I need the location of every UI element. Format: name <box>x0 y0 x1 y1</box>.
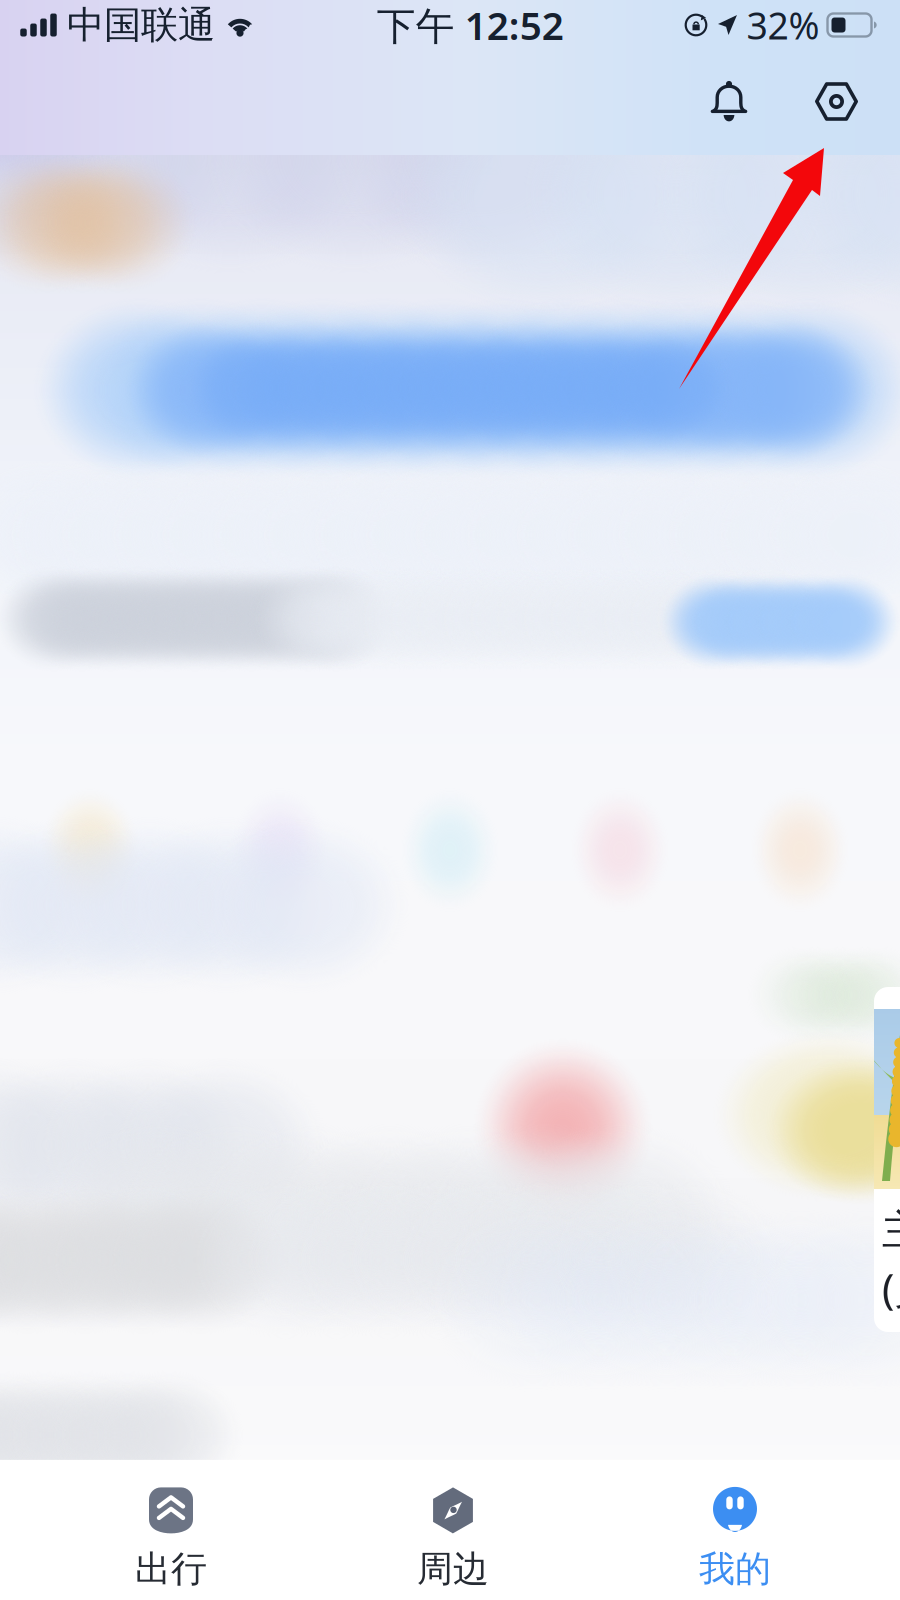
button[interactable]: 周边 <box>312 1460 594 1600</box>
button[interactable]: 主 <box>874 987 900 1332</box>
button[interactable]: 出行 <box>30 1460 312 1600</box>
button[interactable]: Settings <box>805 70 868 133</box>
staticText: 下午 12:52 <box>377 0 564 51</box>
staticText: 出行 <box>135 1547 207 1591</box>
button[interactable]: 我的 <box>594 1460 876 1600</box>
staticText: 我的 <box>699 1547 771 1591</box>
staticText: 中国联通 <box>67 2 215 48</box>
staticText: (兑 <box>882 1261 900 1316</box>
staticText: 32% <box>746 0 819 50</box>
staticText: 周边 <box>417 1547 489 1591</box>
staticText: 主 <box>882 1205 900 1256</box>
button[interactable]: Notifications <box>700 70 758 133</box>
